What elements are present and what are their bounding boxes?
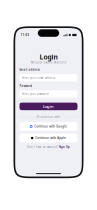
staticText: Continue with Google xyxy=(34,125,67,128)
staticText: Sign Up xyxy=(59,145,70,149)
staticText: Welcome back to Wisefund xyxy=(30,61,66,64)
staticText: Login xyxy=(39,53,57,61)
staticText: Login xyxy=(43,104,54,109)
staticText: Password xyxy=(19,84,32,88)
staticText: Continue with Apple xyxy=(35,136,66,140)
staticText: Don't have an account? xyxy=(27,145,58,149)
button[interactable]: Login xyxy=(19,103,77,110)
staticText: 11:03 xyxy=(20,33,29,37)
button[interactable]: Continue with Google xyxy=(19,122,77,131)
button[interactable]: Continue with Apple xyxy=(19,134,77,142)
button[interactable]: Don't have an account? xyxy=(19,145,77,149)
staticText: Or continue with xyxy=(36,115,60,119)
staticText: Email address xyxy=(19,68,39,71)
staticText: Enter your password xyxy=(22,92,49,96)
staticText: Enter your email address xyxy=(22,76,55,80)
